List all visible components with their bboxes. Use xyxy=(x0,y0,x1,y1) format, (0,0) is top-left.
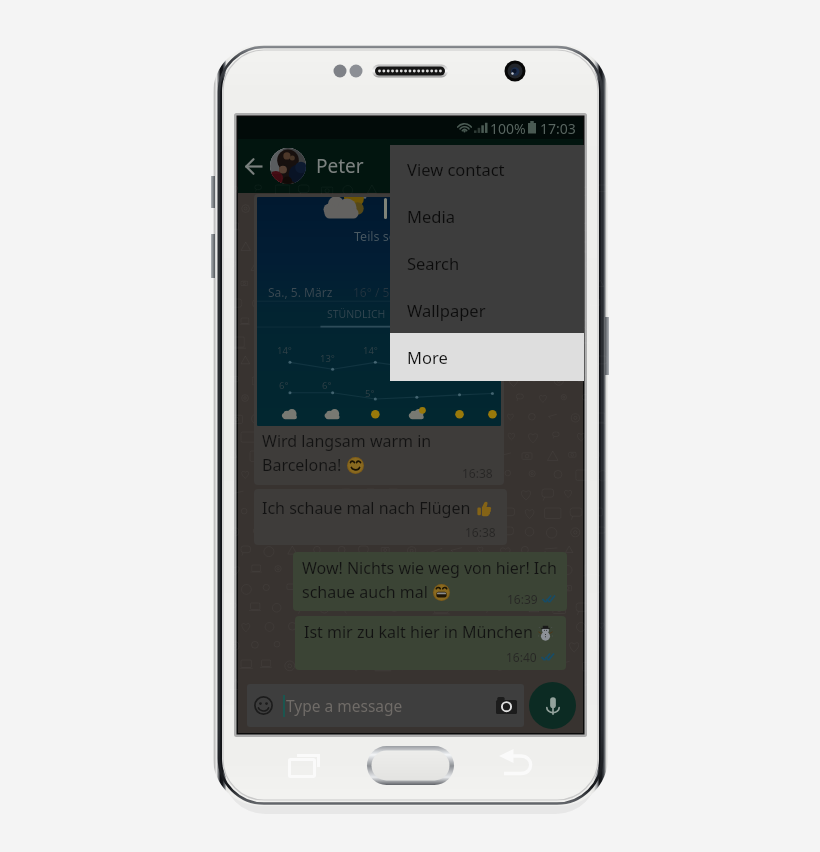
button[interactable]: Ich schaue mal nach Flügen xyxy=(254,489,507,545)
staticText: 5° xyxy=(365,387,375,400)
button[interactable]: Back xyxy=(238,144,270,188)
staticText: Ich schaue mal nach Flügen xyxy=(262,497,471,519)
button[interactable]: Contact photo xyxy=(270,148,306,184)
staticText: 6° xyxy=(279,379,289,392)
staticText: Wird langsam warm in xyxy=(262,430,432,452)
other: Emoji xyxy=(254,696,273,715)
staticText: 14° xyxy=(277,344,292,357)
button[interactable]: Ist mir zu kalt hier in München xyxy=(295,616,566,670)
staticText: View contact xyxy=(407,158,505,180)
staticText: More xyxy=(407,346,448,368)
staticText: 16:40 xyxy=(506,649,537,665)
staticText: 16:38 xyxy=(465,524,496,540)
staticText: Barcelona! xyxy=(262,454,342,476)
staticText: 14° xyxy=(363,344,378,357)
staticText: 16:39 xyxy=(507,591,538,607)
button[interactable]: More xyxy=(390,333,584,381)
staticText: 13° xyxy=(320,352,335,365)
button[interactable]: Media xyxy=(390,192,584,239)
staticText: 6° xyxy=(322,379,332,392)
button[interactable]: Emoji xyxy=(247,684,524,727)
staticText: 16° / 5° xyxy=(353,284,395,300)
button[interactable]: Wow! Nichts wie weg von hier! Ich xyxy=(293,552,567,611)
staticText: Wallpaper xyxy=(407,299,486,321)
button[interactable]: Teils sonnig xyxy=(254,194,504,485)
button[interactable]: Search xyxy=(390,239,584,286)
button[interactable]: Wallpaper xyxy=(390,286,584,333)
staticText: 16:38 xyxy=(462,465,493,481)
staticText: STÜNDLICH xyxy=(327,307,386,321)
staticText: Ist mir zu kalt hier in München xyxy=(304,621,533,643)
staticText: Media xyxy=(407,205,455,227)
button[interactable]: View contact xyxy=(390,145,584,192)
staticText: Search xyxy=(407,252,460,274)
staticText: schaue auch mal xyxy=(302,581,428,603)
staticText: Type a message xyxy=(286,695,403,716)
button[interactable]: Record voice message xyxy=(529,682,576,729)
staticText: Peter xyxy=(316,153,364,179)
staticText: Wow! Nichts wie weg von hier! Ich xyxy=(302,557,557,579)
staticText: 17:03 xyxy=(540,119,576,138)
other: Camera xyxy=(496,697,517,714)
staticText: Teils sonnig xyxy=(354,228,423,245)
staticText: Sa., 5. März xyxy=(268,284,333,300)
staticText: 100% xyxy=(490,119,526,138)
